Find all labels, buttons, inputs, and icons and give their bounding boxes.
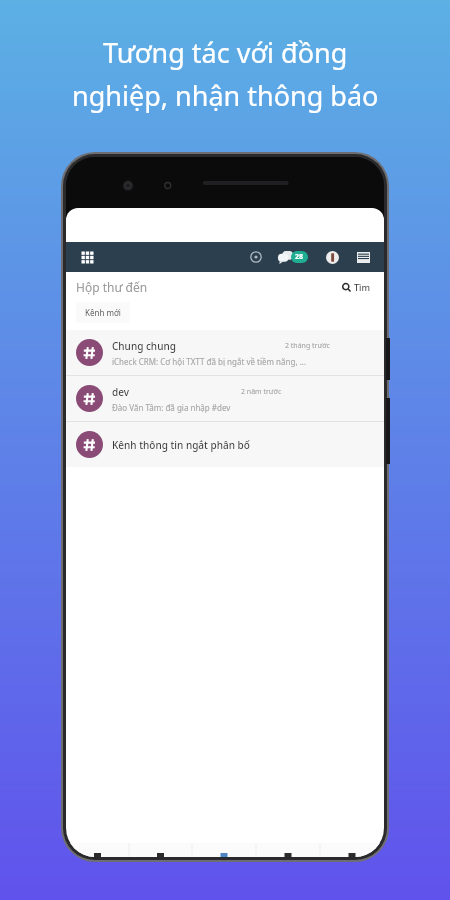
button[interactable]: Kênh mới bbox=[76, 302, 130, 323]
staticText: Đào Văn Tâm: đã gia nhập #dev bbox=[112, 402, 231, 413]
staticText: nghiệp, nhận thông báo bbox=[72, 77, 379, 114]
staticText: 28 bbox=[295, 252, 304, 262]
button[interactable]: Chat bbox=[129, 843, 192, 857]
staticText: Hộp thư đến bbox=[76, 279, 148, 295]
button[interactable]: Messages bbox=[278, 244, 312, 270]
button[interactable]: Feed bbox=[192, 843, 256, 857]
staticText: Kênh thông tin ngắt phân bố bbox=[112, 438, 250, 452]
button[interactable]: Kênh thông tin ngắt phân bố bbox=[66, 422, 384, 467]
button[interactable]: History bbox=[243, 244, 269, 270]
button[interactable]: Menu bbox=[351, 245, 375, 269]
button[interactable]: More bbox=[320, 843, 384, 857]
button[interactable]: Home bbox=[66, 843, 129, 857]
button[interactable]: Apps bbox=[75, 245, 99, 269]
staticText: dev bbox=[112, 385, 130, 399]
button[interactable]: Chung chung bbox=[66, 330, 384, 375]
staticText: Tương tác với đồng bbox=[103, 34, 348, 71]
button[interactable]: dev bbox=[66, 376, 384, 421]
button[interactable]: Tìm bbox=[339, 278, 374, 296]
staticText: iCheck CRM: Cơ hội TXTT đã bị ngắt về ti… bbox=[112, 356, 307, 367]
staticText: 2 năm trước bbox=[241, 387, 282, 397]
staticText: 2 tháng trước bbox=[285, 341, 330, 351]
staticText: Kênh mới bbox=[85, 307, 121, 318]
button[interactable]: Task bbox=[256, 843, 320, 857]
button[interactable]: Profile bbox=[320, 245, 344, 269]
staticText: Tìm bbox=[354, 281, 371, 293]
staticText: Chung chung bbox=[112, 339, 176, 353]
